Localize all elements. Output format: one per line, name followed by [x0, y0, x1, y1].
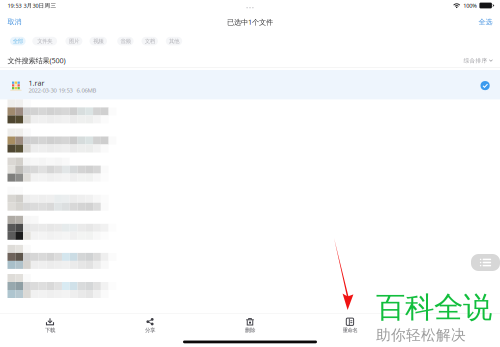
button[interactable]: 视频 [89, 37, 107, 45]
button[interactable]: Switch list view [471, 254, 500, 271]
staticText: 文件夹 [37, 38, 52, 45]
staticText: 分享 [145, 327, 155, 334]
button[interactable]: 图片 [65, 37, 82, 45]
staticText: 100% [463, 2, 477, 9]
button[interactable]: 文件夹 [32, 37, 57, 45]
staticText: 已选中1个文件 [227, 17, 273, 27]
staticText: 其他 [169, 38, 179, 45]
button[interactable]: 音频 [117, 37, 134, 45]
staticText: 助你轻松解决 [376, 326, 466, 344]
staticText: 文件搜索结果(500) [8, 56, 66, 65]
button[interactable]: 取消 [0, 15, 29, 29]
button[interactable]: 删除 [200, 314, 300, 338]
staticText: 百科全说 [376, 289, 492, 326]
button[interactable]: 1.rar [0, 70, 500, 101]
staticText: 全部 [13, 38, 23, 45]
button[interactable]: 文档 [141, 37, 158, 45]
staticText: 图片 [69, 38, 79, 45]
button[interactable]: 分享 [100, 314, 200, 338]
staticText: 19:53 3月30日周三 [7, 2, 56, 9]
button[interactable]: 全部 [10, 37, 26, 45]
staticText: 删除 [245, 327, 255, 334]
staticText: 文档 [145, 38, 155, 45]
staticText: 综合排序 [463, 57, 487, 64]
button[interactable]: 其他 [166, 37, 182, 45]
staticText: 取消 [8, 17, 22, 26]
staticText: 1.rar [29, 78, 45, 88]
staticText: 重命名 [342, 327, 357, 334]
button[interactable]: 综合排序 [463, 55, 493, 66]
staticText: 下载 [45, 327, 55, 334]
staticText: 2022-03-30 19:53 6.06MB [29, 86, 97, 94]
button[interactable]: 下载 [0, 314, 100, 338]
staticText: 视频 [93, 38, 103, 45]
button[interactable]: 重命名 [300, 314, 400, 338]
button[interactable]: 全选 [471, 15, 500, 29]
staticText: 音频 [120, 38, 130, 45]
staticText: 全选 [478, 17, 492, 26]
